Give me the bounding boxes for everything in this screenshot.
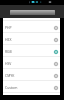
staticText: PHP <box>5 25 54 30</box>
button[interactable]: PHP <box>3 21 60 32</box>
staticText: CMYK <box>5 73 54 78</box>
button[interactable]: Custom <box>3 81 60 92</box>
button[interactable]: Select format <box>10 10 55 15</box>
button[interactable]: HEX <box>3 33 60 44</box>
staticText: HSV <box>5 61 54 66</box>
button[interactable]: HSV <box>3 57 60 68</box>
staticText: RGB <box>5 49 54 54</box>
staticText: HEX <box>5 37 54 42</box>
button[interactable]: RGB <box>3 45 60 56</box>
button[interactable]: CMYK <box>3 69 60 80</box>
staticText: Custom <box>5 85 54 90</box>
